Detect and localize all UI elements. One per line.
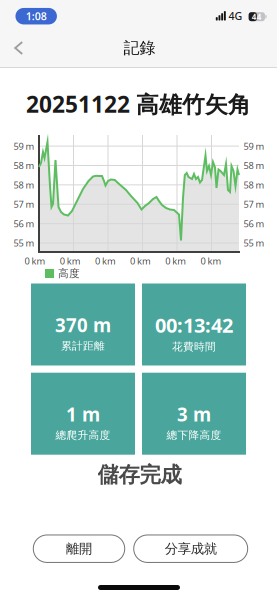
staticText: 58 m: [243, 179, 264, 191]
button[interactable]: 離開: [33, 535, 125, 562]
staticText: 44: [252, 11, 262, 22]
staticText: 記錄: [123, 38, 155, 58]
staticText: 57 m: [243, 198, 264, 210]
staticText: 0 km: [200, 255, 221, 267]
staticText: 58 m: [13, 159, 34, 172]
staticText: 58 m: [13, 179, 34, 191]
staticText: 59 m: [243, 140, 264, 152]
staticText: 58 m: [243, 159, 264, 172]
button[interactable]: 1 m: [31, 373, 135, 455]
button[interactable]: 分享成就: [134, 535, 248, 562]
staticText: 分享成就: [165, 540, 217, 557]
staticText: 總爬升高度: [55, 428, 110, 442]
staticText: 高度: [58, 267, 80, 280]
staticText: 370 m: [55, 313, 111, 337]
staticText: 55 m: [13, 237, 34, 249]
staticText: 0 km: [130, 255, 151, 267]
button[interactable]: 370 m: [31, 283, 135, 365]
staticText: 1 m: [66, 402, 100, 427]
staticText: 花費時間: [172, 340, 216, 353]
staticText: 20251122 高雄竹矢角: [26, 89, 251, 119]
button[interactable]: 1:08: [15, 8, 57, 24]
staticText: 3 m: [177, 402, 211, 427]
staticText: 0 km: [24, 255, 45, 267]
button[interactable]: [6, 33, 32, 63]
staticText: 離開: [66, 540, 92, 557]
staticText: 0 km: [95, 255, 116, 267]
staticText: 4G: [228, 9, 242, 23]
staticText: 00:13:42: [155, 312, 233, 338]
staticText: 1:08: [26, 9, 47, 23]
staticText: 56 m: [13, 217, 34, 230]
button[interactable]: 00:13:42: [142, 283, 246, 365]
staticText: 57 m: [13, 198, 34, 210]
staticText: 累計距離: [61, 339, 105, 352]
staticText: 總下降高度: [166, 428, 221, 442]
staticText: 56 m: [243, 217, 264, 230]
staticText: 59 m: [13, 140, 34, 152]
staticText: 0 km: [60, 255, 81, 267]
staticText: 0 km: [165, 255, 186, 267]
button[interactable]: 3 m: [142, 373, 246, 455]
staticText: 儲存完成: [97, 462, 181, 488]
staticText: 55 m: [243, 237, 264, 249]
